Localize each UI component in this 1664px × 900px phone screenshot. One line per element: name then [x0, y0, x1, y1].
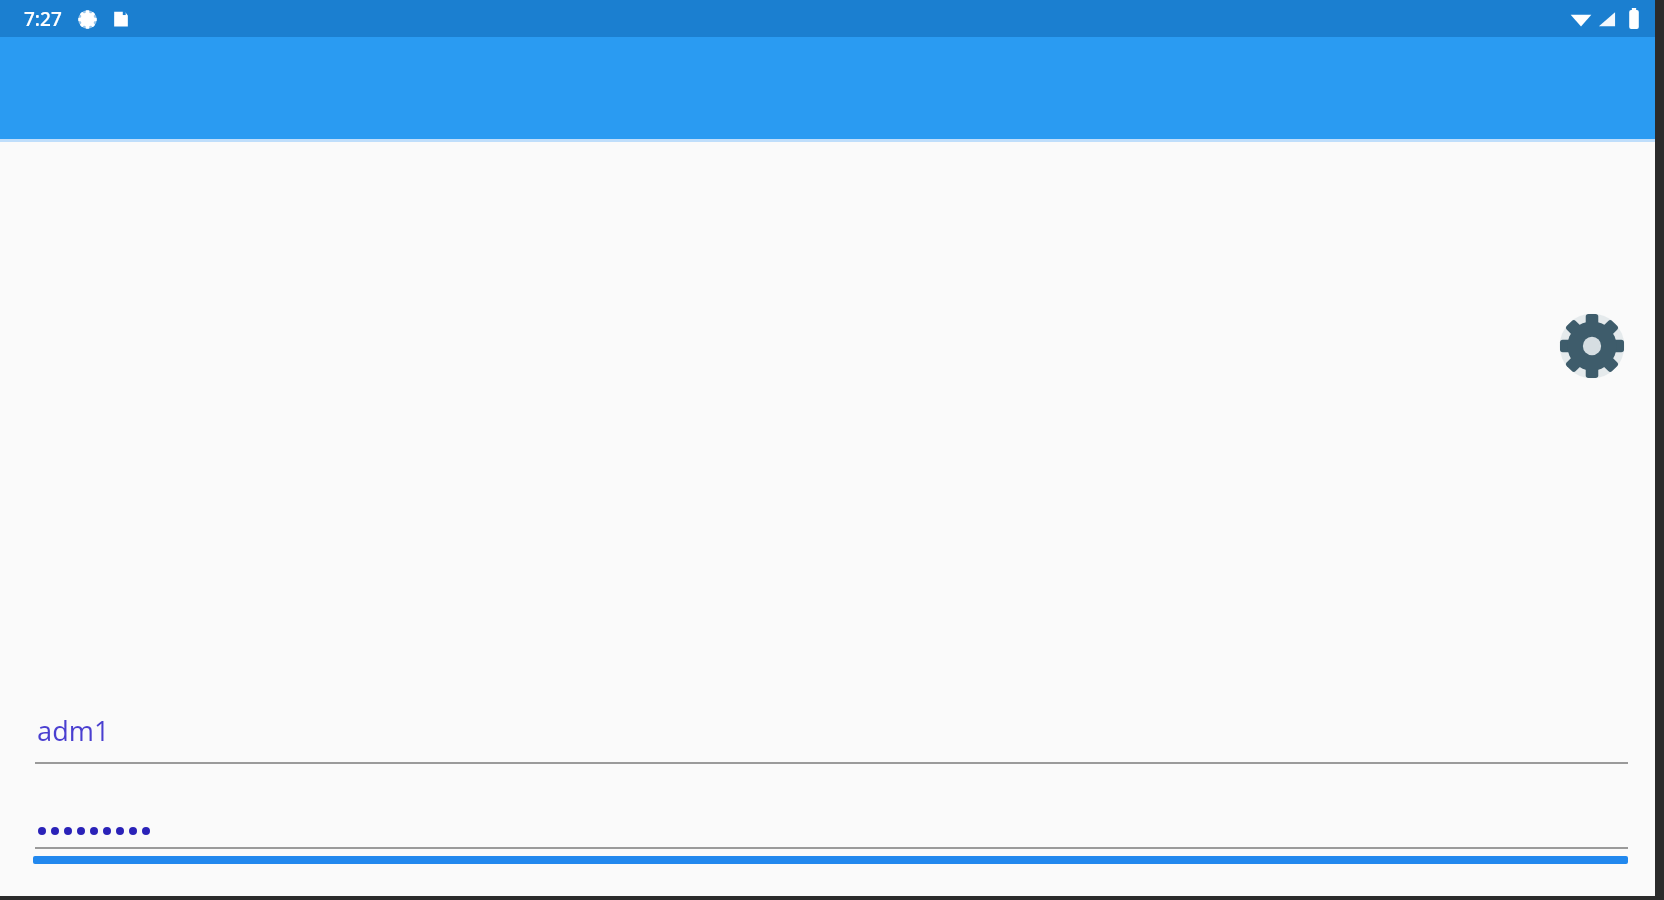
staticText: adm1 — [37, 712, 110, 749]
button[interactable]: Settings — [1556, 310, 1628, 382]
staticText: 7:27 — [24, 6, 62, 32]
button[interactable] — [35, 797, 1628, 849]
button[interactable]: adm1 — [35, 712, 1628, 764]
